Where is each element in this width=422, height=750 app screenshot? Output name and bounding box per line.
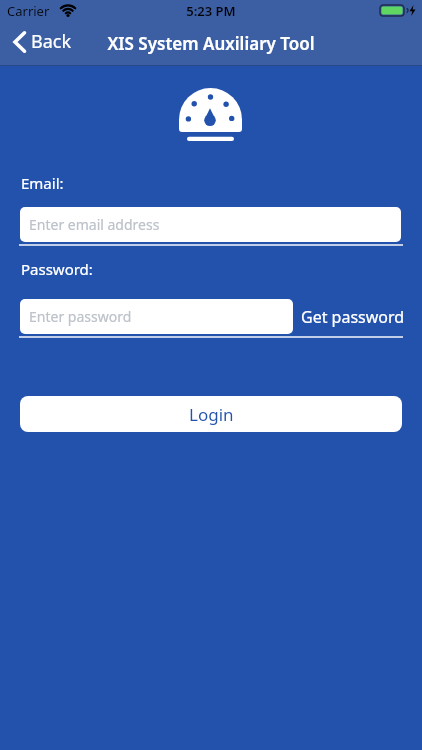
staticText: Email: — [21, 173, 64, 193]
staticText: Back — [31, 29, 72, 54]
button[interactable]: Get password — [297, 299, 409, 334]
staticText: XIS System Auxiliary Tool — [0, 32, 422, 55]
staticText: Enter password — [29, 307, 132, 326]
staticText: Enter email address — [29, 215, 160, 234]
staticText: Get password — [301, 306, 405, 328]
button[interactable]: Login — [20, 396, 402, 432]
staticText: Password: — [21, 259, 93, 279]
staticText: Login — [189, 403, 234, 426]
button[interactable]: Enter password — [20, 299, 293, 334]
button[interactable]: Back — [12, 29, 72, 54]
staticText: 5:23 PM — [0, 2, 422, 20]
staticText: Carrier — [7, 2, 50, 20]
button[interactable]: Enter email address — [20, 207, 401, 242]
